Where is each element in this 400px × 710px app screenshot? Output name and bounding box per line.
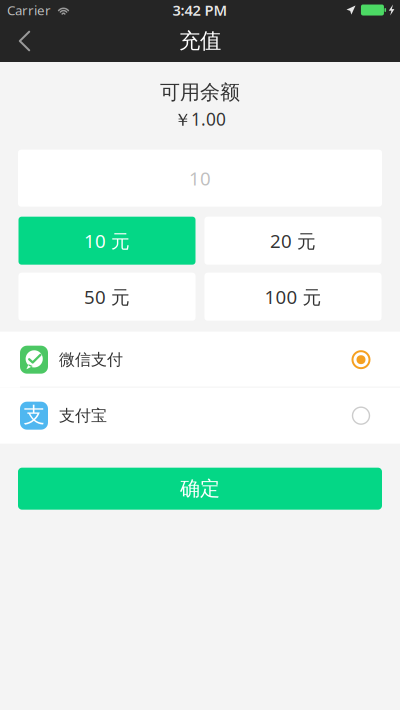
button[interactable]: 20 元 — [204, 217, 381, 265]
staticText: ￥1.00 — [174, 108, 226, 131]
button[interactable]: Back — [0, 20, 48, 62]
button[interactable]: 确定 — [18, 468, 382, 510]
staticText: 支 — [23, 402, 44, 428]
staticText: 50 元 — [84, 284, 130, 309]
button[interactable]: 微信支付 — [0, 332, 400, 388]
button[interactable]: 10 元 — [18, 217, 195, 265]
staticText: 10 — [189, 166, 211, 191]
staticText: 100 元 — [264, 284, 321, 309]
button[interactable]: 支 — [0, 388, 400, 444]
staticText: 可用余额 — [160, 80, 240, 105]
button[interactable]: 100 元 — [204, 273, 381, 321]
staticText: 微信支付 — [59, 350, 123, 369]
staticText: 支付宝 — [59, 406, 107, 425]
staticText: 10 元 — [84, 228, 130, 253]
staticText: 充值 — [179, 28, 221, 54]
staticText: 3:42 PM — [172, 0, 227, 20]
staticText: Carrier — [7, 1, 51, 19]
button[interactable]: 50 元 — [18, 273, 195, 321]
staticText: 20 元 — [270, 228, 316, 253]
staticText: 确定 — [180, 476, 220, 501]
